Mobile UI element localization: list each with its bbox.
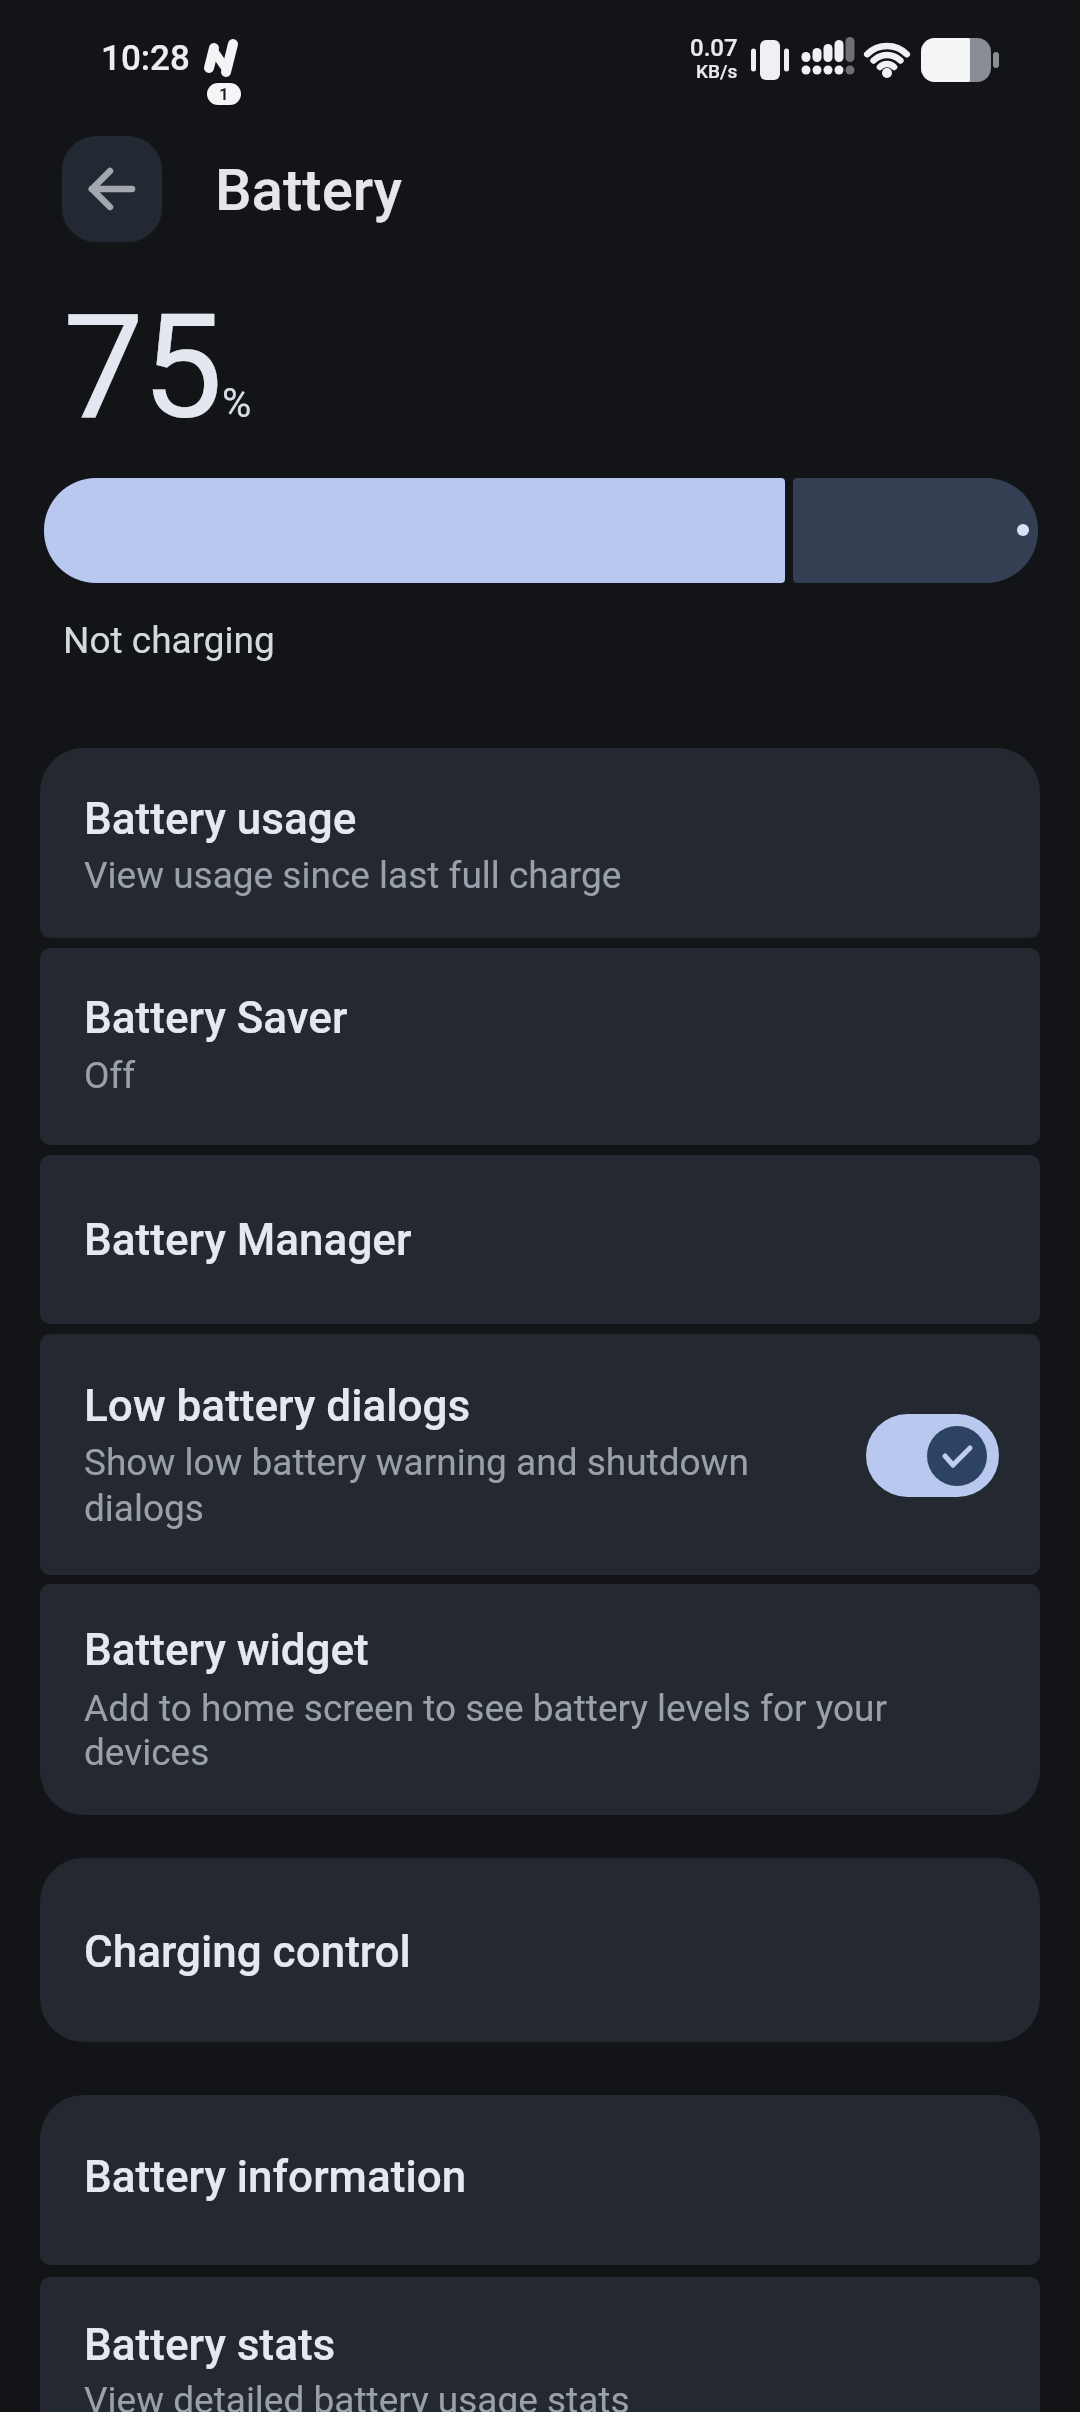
staticText: dialogs	[84, 1487, 204, 1530]
staticText: Battery	[215, 156, 402, 224]
staticText: View usage since last full charge	[84, 854, 622, 897]
button[interactable]: Battery usage	[40, 748, 1040, 938]
staticText: Low battery dialogs	[84, 1380, 471, 1432]
staticText: View detailed battery usage stats	[84, 2379, 630, 2412]
staticText: Battery Manager	[84, 1214, 412, 1266]
staticText: Off	[84, 1054, 136, 1097]
staticText: Charging control	[84, 1926, 411, 1978]
staticText: Add to home screen to see battery levels…	[84, 1687, 888, 1730]
staticText: Battery information	[84, 2151, 467, 2203]
staticText: Battery Saver	[84, 992, 348, 1044]
staticText: Battery widget	[84, 1624, 369, 1676]
staticText: 10:28	[101, 38, 190, 79]
staticText: Show low battery warning and shutdown	[84, 1441, 749, 1484]
button[interactable]: Battery widget	[40, 1584, 1040, 1815]
staticText: Battery usage	[84, 793, 357, 845]
button[interactable]	[866, 1414, 999, 1497]
button[interactable]: Battery Saver	[40, 948, 1040, 1145]
button[interactable]: Battery Manager	[40, 1155, 1040, 1324]
staticText: 0.07	[690, 34, 738, 60]
button[interactable]: Battery information	[40, 2095, 1040, 2265]
staticText: 75	[63, 283, 221, 452]
staticText: %	[222, 380, 252, 427]
button[interactable]	[62, 136, 162, 242]
button[interactable]: Battery stats	[40, 2277, 1040, 2412]
staticText: 1	[219, 84, 229, 104]
staticText: Battery stats	[84, 2319, 336, 2371]
button[interactable]: Low battery dialogs	[40, 1334, 1040, 1575]
staticText: Not charging	[63, 619, 275, 662]
staticText: devices	[84, 1731, 210, 1774]
button[interactable]: Charging control	[40, 1858, 1040, 2042]
staticText: KB/s	[696, 60, 738, 82]
